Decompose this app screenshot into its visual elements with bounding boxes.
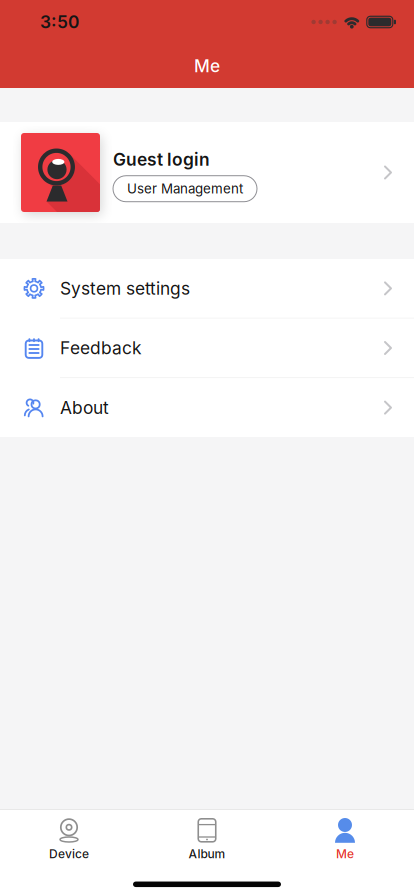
button[interactable]: Me xyxy=(276,818,414,861)
button[interactable]: Album xyxy=(138,818,276,861)
button[interactable]: User Management xyxy=(113,176,257,202)
staticText: About xyxy=(60,397,109,418)
staticText: Album xyxy=(188,847,225,861)
staticText: Feedback xyxy=(60,338,142,358)
staticText: Me xyxy=(336,847,354,861)
button[interactable]: Device xyxy=(0,818,138,861)
staticText: Guest login xyxy=(113,149,210,170)
button[interactable]: System settings xyxy=(0,259,414,318)
staticText: Device xyxy=(49,847,89,861)
staticText: User Management xyxy=(127,181,243,197)
button[interactable]: Guest login xyxy=(0,122,414,223)
button[interactable]: Feedback xyxy=(0,319,414,377)
staticText: Me xyxy=(194,56,220,76)
staticText: System settings xyxy=(60,278,190,299)
button[interactable]: About xyxy=(0,378,414,437)
staticText: 3:50 xyxy=(40,12,79,32)
